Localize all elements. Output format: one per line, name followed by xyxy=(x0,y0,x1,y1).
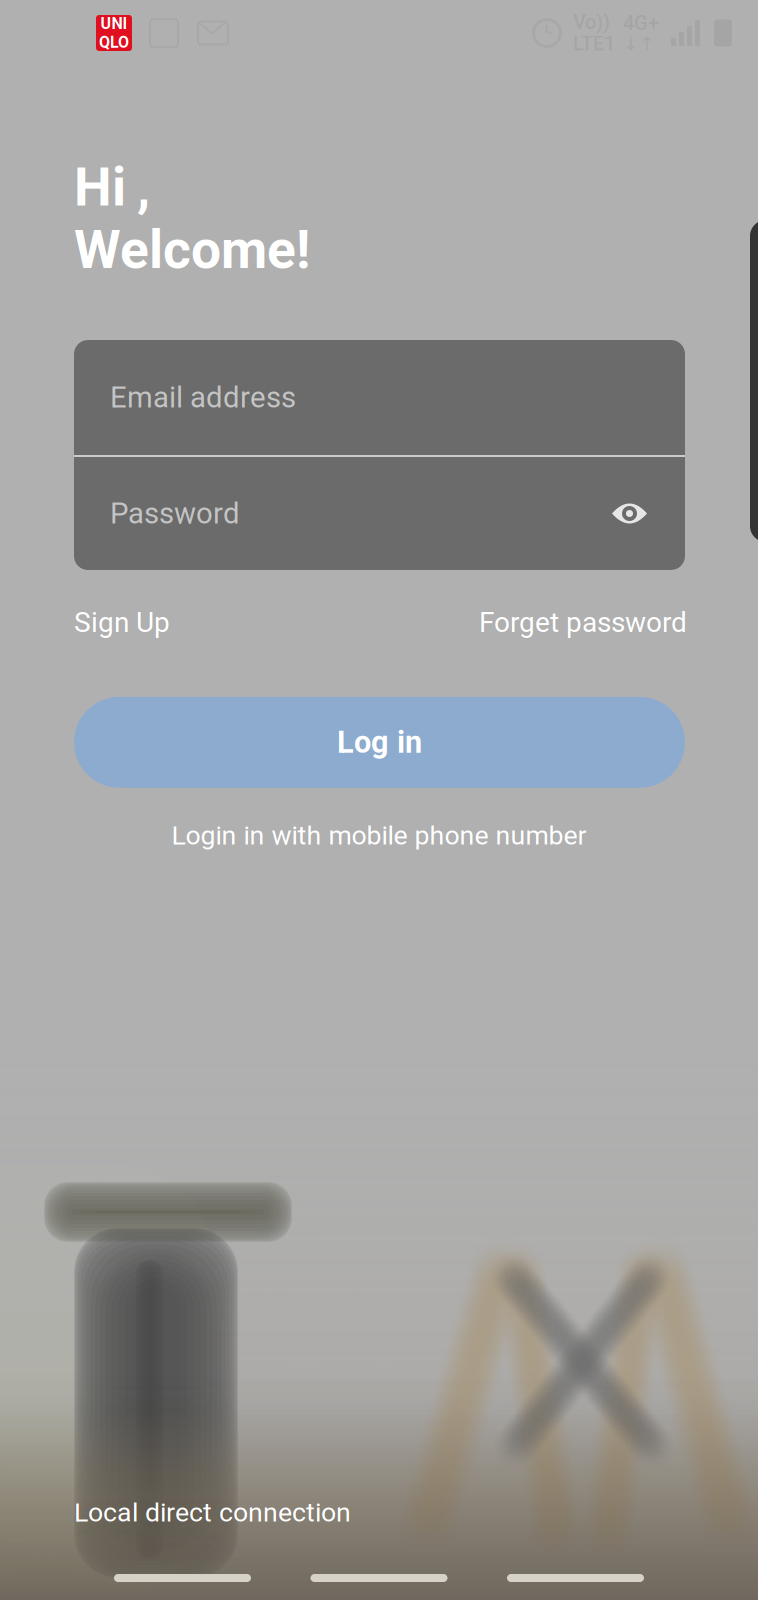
button[interactable]: Open side panel xyxy=(750,220,758,542)
button[interactable]: Sign Up xyxy=(74,606,170,639)
staticText: Welcome! xyxy=(74,218,310,281)
staticText: Forget password xyxy=(479,606,687,639)
staticText: Local direct connection xyxy=(74,1497,351,1528)
staticText: LTE1 xyxy=(573,32,615,55)
staticText: QLO xyxy=(99,33,129,52)
staticText: Login in with mobile phone number xyxy=(171,820,586,851)
button[interactable]: Email address xyxy=(74,340,685,455)
staticText: Vo)) xyxy=(573,11,610,34)
button[interactable]: Login in with mobile phone number xyxy=(171,820,586,851)
button[interactable]: Forget password xyxy=(479,606,687,639)
staticText: 4G+ xyxy=(623,11,659,35)
staticText: Email address xyxy=(110,380,296,415)
button[interactable]: Password xyxy=(74,457,685,570)
staticText: Hi , xyxy=(74,156,150,218)
button[interactable]: Log in xyxy=(74,697,685,788)
staticText: Password xyxy=(110,496,240,531)
staticText: Sign Up xyxy=(74,606,170,639)
staticText: UNI xyxy=(100,14,127,33)
staticText: Log in xyxy=(337,724,422,760)
